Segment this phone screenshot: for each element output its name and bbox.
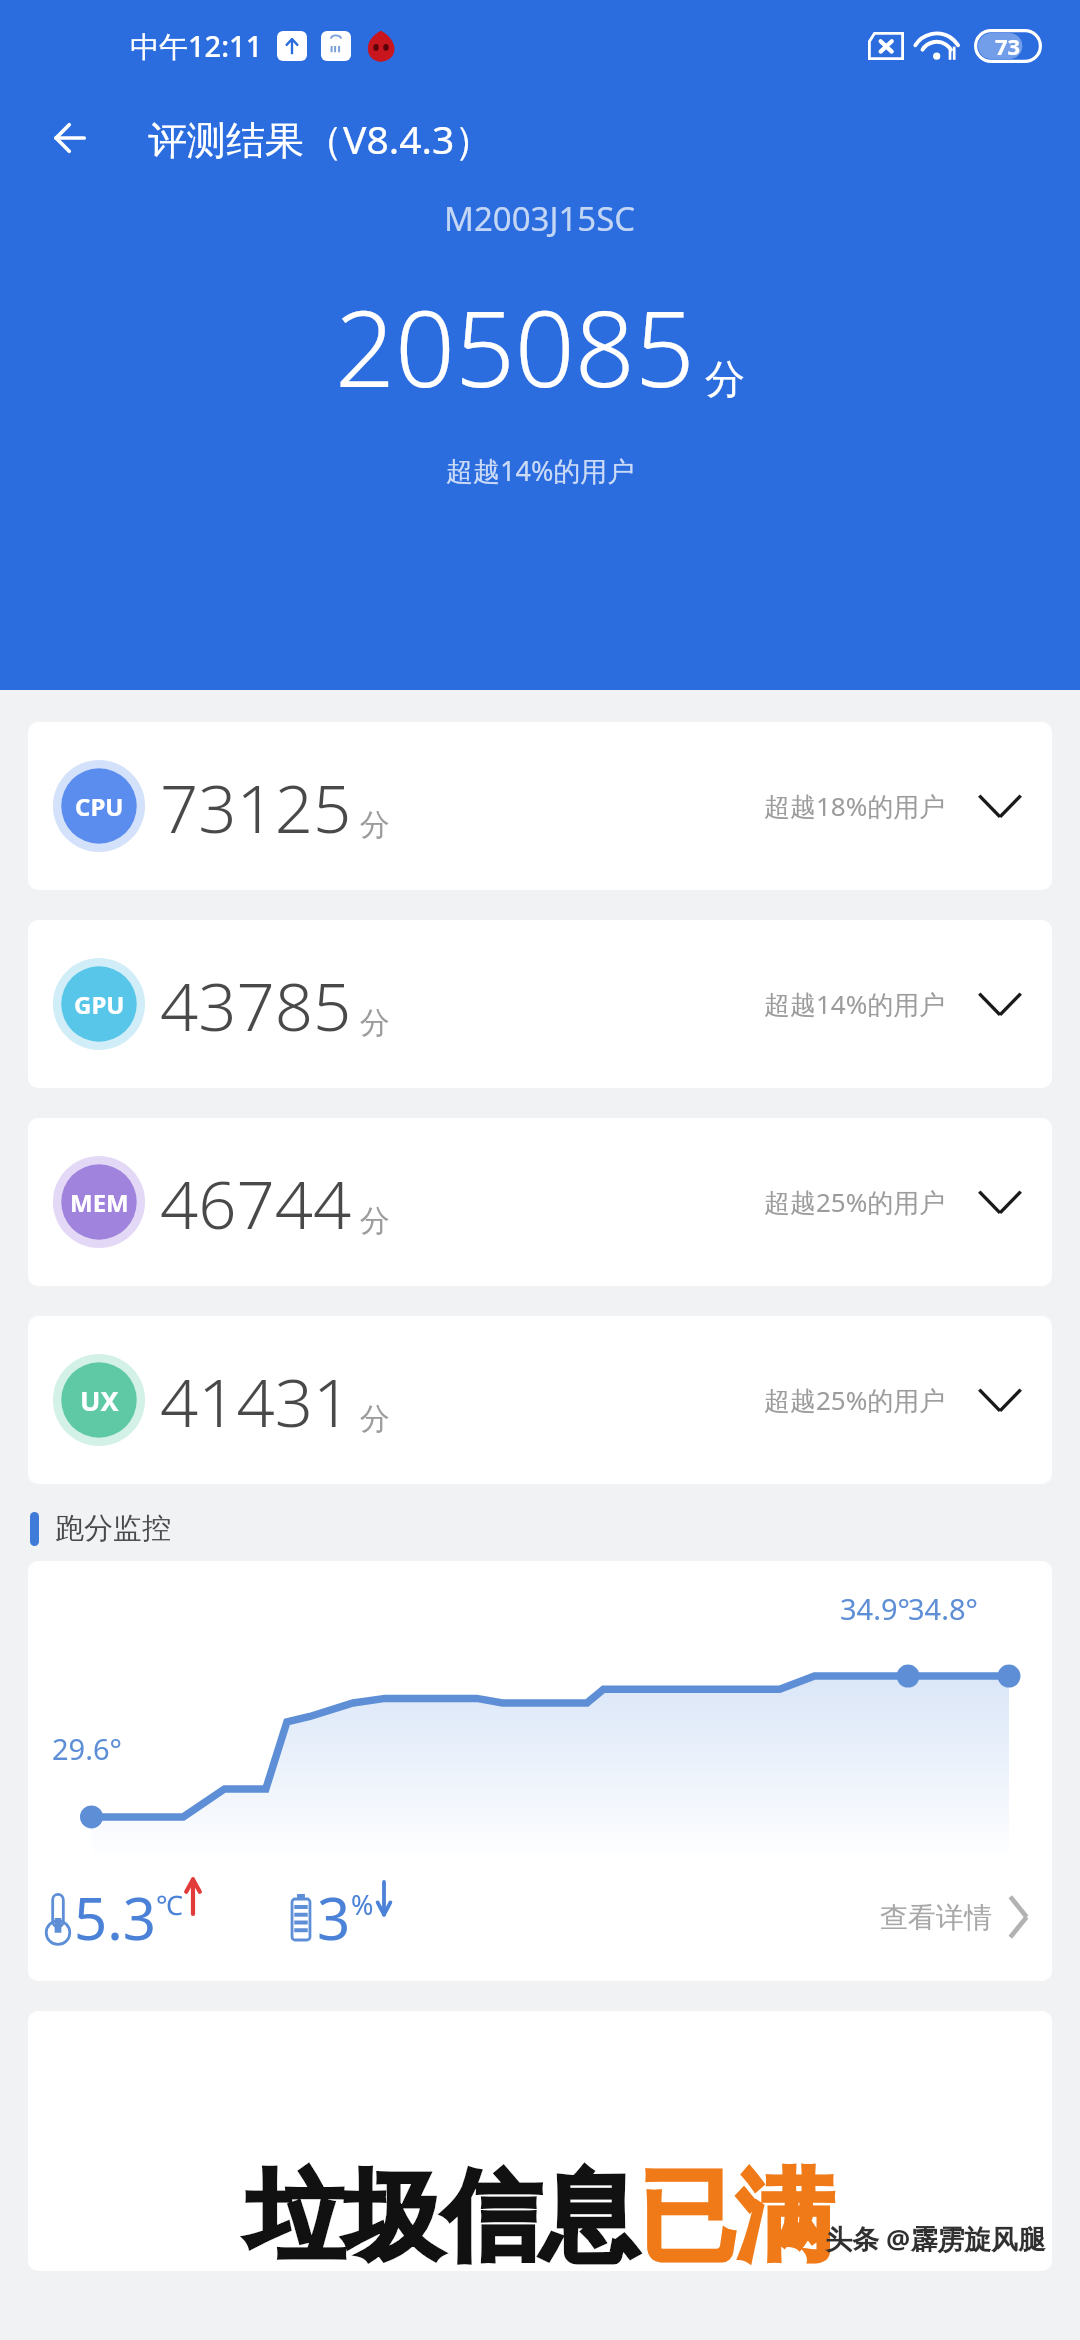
button[interactable]: 29.6° xyxy=(28,1561,1052,1981)
button[interactable]: Back xyxy=(34,101,108,175)
staticText: 超越14%的用户 xyxy=(764,986,946,1022)
staticText: 查看详情 xyxy=(880,1900,992,1935)
staticText: 超越14%的用户 xyxy=(446,452,635,489)
staticText: 41431 xyxy=(160,1355,352,1446)
staticText: CPU xyxy=(75,790,124,823)
button[interactable]: UX xyxy=(28,1316,1052,1484)
staticText: 已满 xyxy=(638,2156,834,2271)
button[interactable]: Expand xyxy=(972,976,1028,1032)
staticText: 分 xyxy=(360,1400,390,1438)
staticText: 分 xyxy=(360,806,390,844)
staticText: 分 xyxy=(360,1202,390,1240)
staticText: 205085 xyxy=(335,275,695,418)
staticText: 垃圾信息 xyxy=(246,2156,638,2271)
button[interactable]: 垃圾信息 xyxy=(28,2011,1052,2271)
button[interactable]: Expand xyxy=(972,778,1028,834)
staticText: 46744 xyxy=(160,1157,352,1248)
staticText: 34.8° xyxy=(908,1589,978,1628)
staticText: 跑分监控 xyxy=(55,1510,171,1547)
staticText: 头条 @霹雳旋风腿 xyxy=(825,2220,1046,2257)
staticText: 5.3 xyxy=(74,1878,156,1957)
staticText: UX xyxy=(80,1382,119,1419)
staticText: 评测结果（V8.4.3） xyxy=(148,112,494,165)
staticText: 29.6° xyxy=(52,1729,122,1768)
staticText: % xyxy=(351,1886,374,1923)
staticText: 超越25%的用户 xyxy=(764,1184,946,1220)
staticText: 73 xyxy=(995,31,1021,61)
button[interactable]: Expand xyxy=(972,1174,1028,1230)
button[interactable]: CPU xyxy=(28,722,1052,890)
staticText: 超越18%的用户 xyxy=(764,788,946,824)
staticText: 超越25%的用户 xyxy=(764,1382,946,1418)
staticText: 中午12:11 xyxy=(130,26,263,66)
staticText: 分 xyxy=(705,354,745,404)
staticText: 43785 xyxy=(160,959,352,1050)
button[interactable]: Expand xyxy=(972,1372,1028,1428)
button[interactable]: 查看详情 xyxy=(874,1884,1036,1950)
staticText: 73125 xyxy=(160,761,352,852)
staticText: MEM xyxy=(70,1186,129,1219)
staticText: 分 xyxy=(360,1004,390,1042)
staticText: GPU xyxy=(74,988,125,1021)
button[interactable]: MEM xyxy=(28,1118,1052,1286)
staticText: ℃ xyxy=(156,1886,183,1923)
staticText: 3 xyxy=(317,1878,351,1957)
staticText: M2003J15SC xyxy=(444,196,636,241)
button[interactable]: GPU xyxy=(28,920,1052,1088)
staticText: 34.9° xyxy=(840,1589,910,1628)
